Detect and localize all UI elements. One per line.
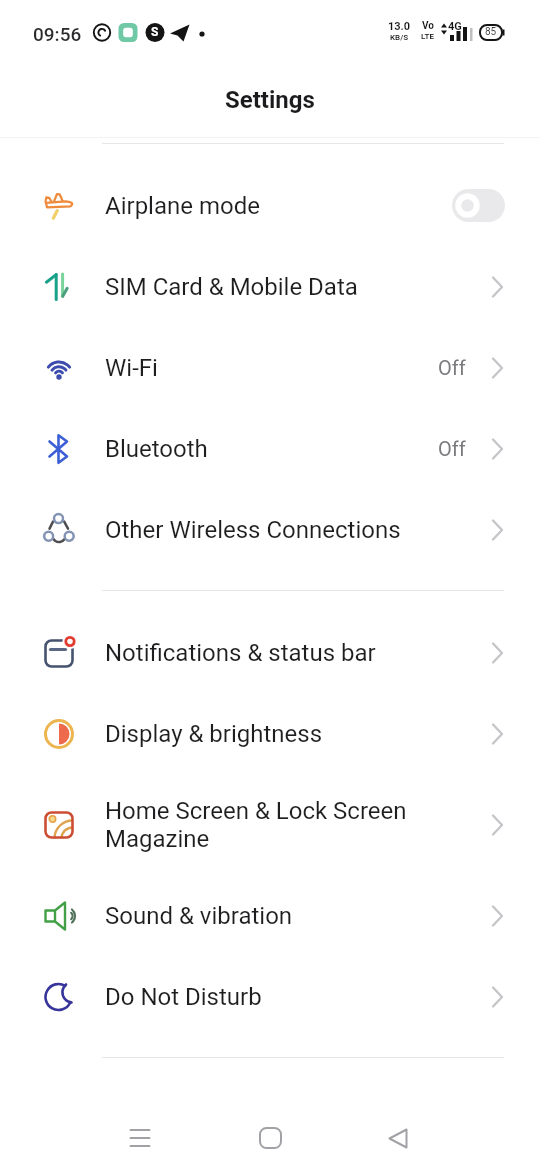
staticText: Magazine	[105, 825, 210, 853]
button[interactable]: Other Wireless Connections	[0, 489, 540, 570]
staticText: S	[151, 25, 159, 39]
staticText: Off	[438, 437, 466, 460]
staticText: Display & brightness	[105, 720, 491, 748]
staticText: 85	[485, 26, 497, 38]
button[interactable]: Airplane mode	[0, 165, 540, 246]
button[interactable]	[240, 1108, 300, 1168]
staticText: 09:56	[33, 23, 82, 45]
button[interactable]: Do Not Disturb	[0, 956, 540, 1037]
staticText: 13.0	[388, 20, 411, 33]
button[interactable]: Display & brightness	[0, 693, 540, 774]
staticText: Settings	[225, 86, 315, 114]
staticText: Off	[438, 356, 466, 379]
staticText: Notifications & status bar	[105, 639, 491, 667]
staticText: Other Wireless Connections	[105, 516, 491, 544]
staticText: KB/S	[390, 33, 409, 42]
staticText: Sound & vibration	[105, 902, 491, 930]
staticText: Do Not Disturb	[105, 983, 491, 1011]
staticText: 4G	[448, 20, 462, 33]
button[interactable]: Wi-Fi	[0, 327, 540, 408]
button[interactable]	[110, 1108, 170, 1168]
staticText: Vo	[422, 20, 434, 32]
staticText: Wi-Fi	[105, 354, 438, 382]
button[interactable]	[368, 1108, 428, 1168]
staticText: LTE	[421, 32, 434, 41]
button[interactable]: Notifications & status bar	[0, 612, 540, 693]
staticText: Airplane mode	[105, 192, 452, 220]
staticText: Bluetooth	[105, 435, 438, 463]
button[interactable]	[452, 189, 505, 222]
staticText: Home Screen & Lock Screen	[105, 797, 407, 825]
staticText: SIM Card & Mobile Data	[105, 273, 491, 301]
button[interactable]: Sound & vibration	[0, 875, 540, 956]
button[interactable]: SIM Card & Mobile Data	[0, 246, 540, 327]
button[interactable]: Home Screen & Lock Screen	[0, 774, 540, 875]
button[interactable]: Bluetooth	[0, 408, 540, 489]
